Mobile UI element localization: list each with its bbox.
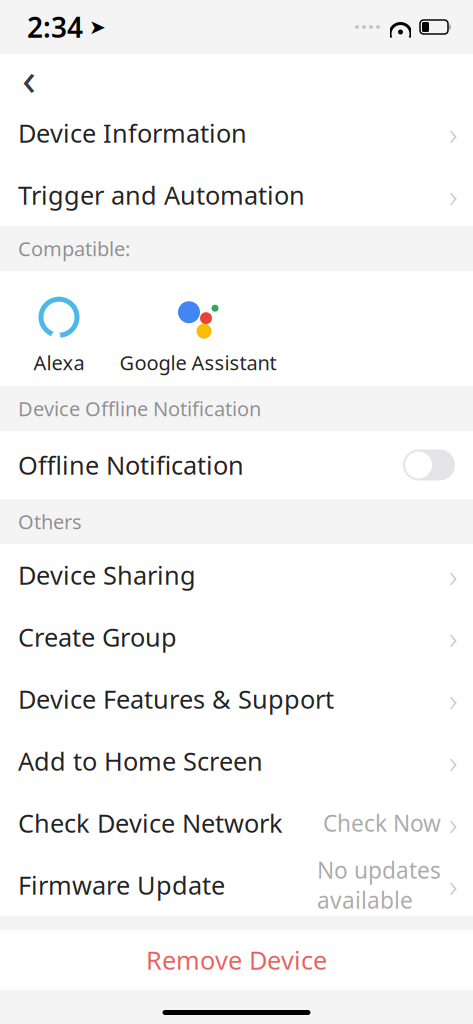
staticText: Remove Device (146, 943, 327, 977)
staticText: › (449, 864, 457, 906)
staticText: › (449, 554, 457, 596)
staticText: › (449, 112, 457, 154)
staticText: No updates available (317, 855, 441, 915)
staticText: Offline Notification (18, 448, 244, 482)
button[interactable]: Back (7, 56, 51, 100)
button[interactable]: Google Assistant (118, 297, 278, 376)
staticText: › (449, 802, 457, 844)
staticText: Alexa (33, 349, 84, 376)
staticText: Device Offline Notification (18, 395, 261, 422)
button[interactable]: Trigger and Automation (0, 164, 473, 226)
staticText: Firmware Update (18, 868, 225, 902)
staticText: Create Group (18, 620, 177, 654)
staticText: › (449, 616, 457, 658)
staticText: Compatible: (18, 235, 130, 262)
staticText: Check Device Network (18, 806, 283, 840)
staticText: ➤ (89, 16, 106, 38)
button[interactable]: Remove Device (0, 930, 473, 990)
button[interactable]: Check Device Network (0, 792, 473, 854)
staticText: Google Assistant (119, 349, 276, 376)
staticText: Device Sharing (18, 558, 196, 592)
staticText: › (449, 174, 457, 216)
staticText: › (449, 678, 457, 720)
staticText: Device Information (18, 116, 247, 150)
button[interactable]: Alexa (0, 297, 118, 376)
staticText: 2:34 (27, 8, 83, 46)
button[interactable]: Device Features & Support (0, 668, 473, 730)
staticText: Device Features & Support (18, 682, 334, 716)
staticText: Check Now (323, 808, 441, 838)
staticText: › (449, 740, 457, 782)
button[interactable]: Create Group (0, 606, 473, 668)
button[interactable]: Offline Notification (0, 431, 473, 499)
staticText: Add to Home Screen (18, 744, 263, 778)
staticText: ‹ (22, 48, 36, 108)
button[interactable]: Device Information (0, 102, 473, 164)
button[interactable]: Firmware Update (0, 854, 473, 916)
staticText: Others (18, 508, 82, 535)
button[interactable]: Device Sharing (0, 544, 473, 606)
staticText: Trigger and Automation (18, 178, 305, 212)
button[interactable]: Add to Home Screen (0, 730, 473, 792)
